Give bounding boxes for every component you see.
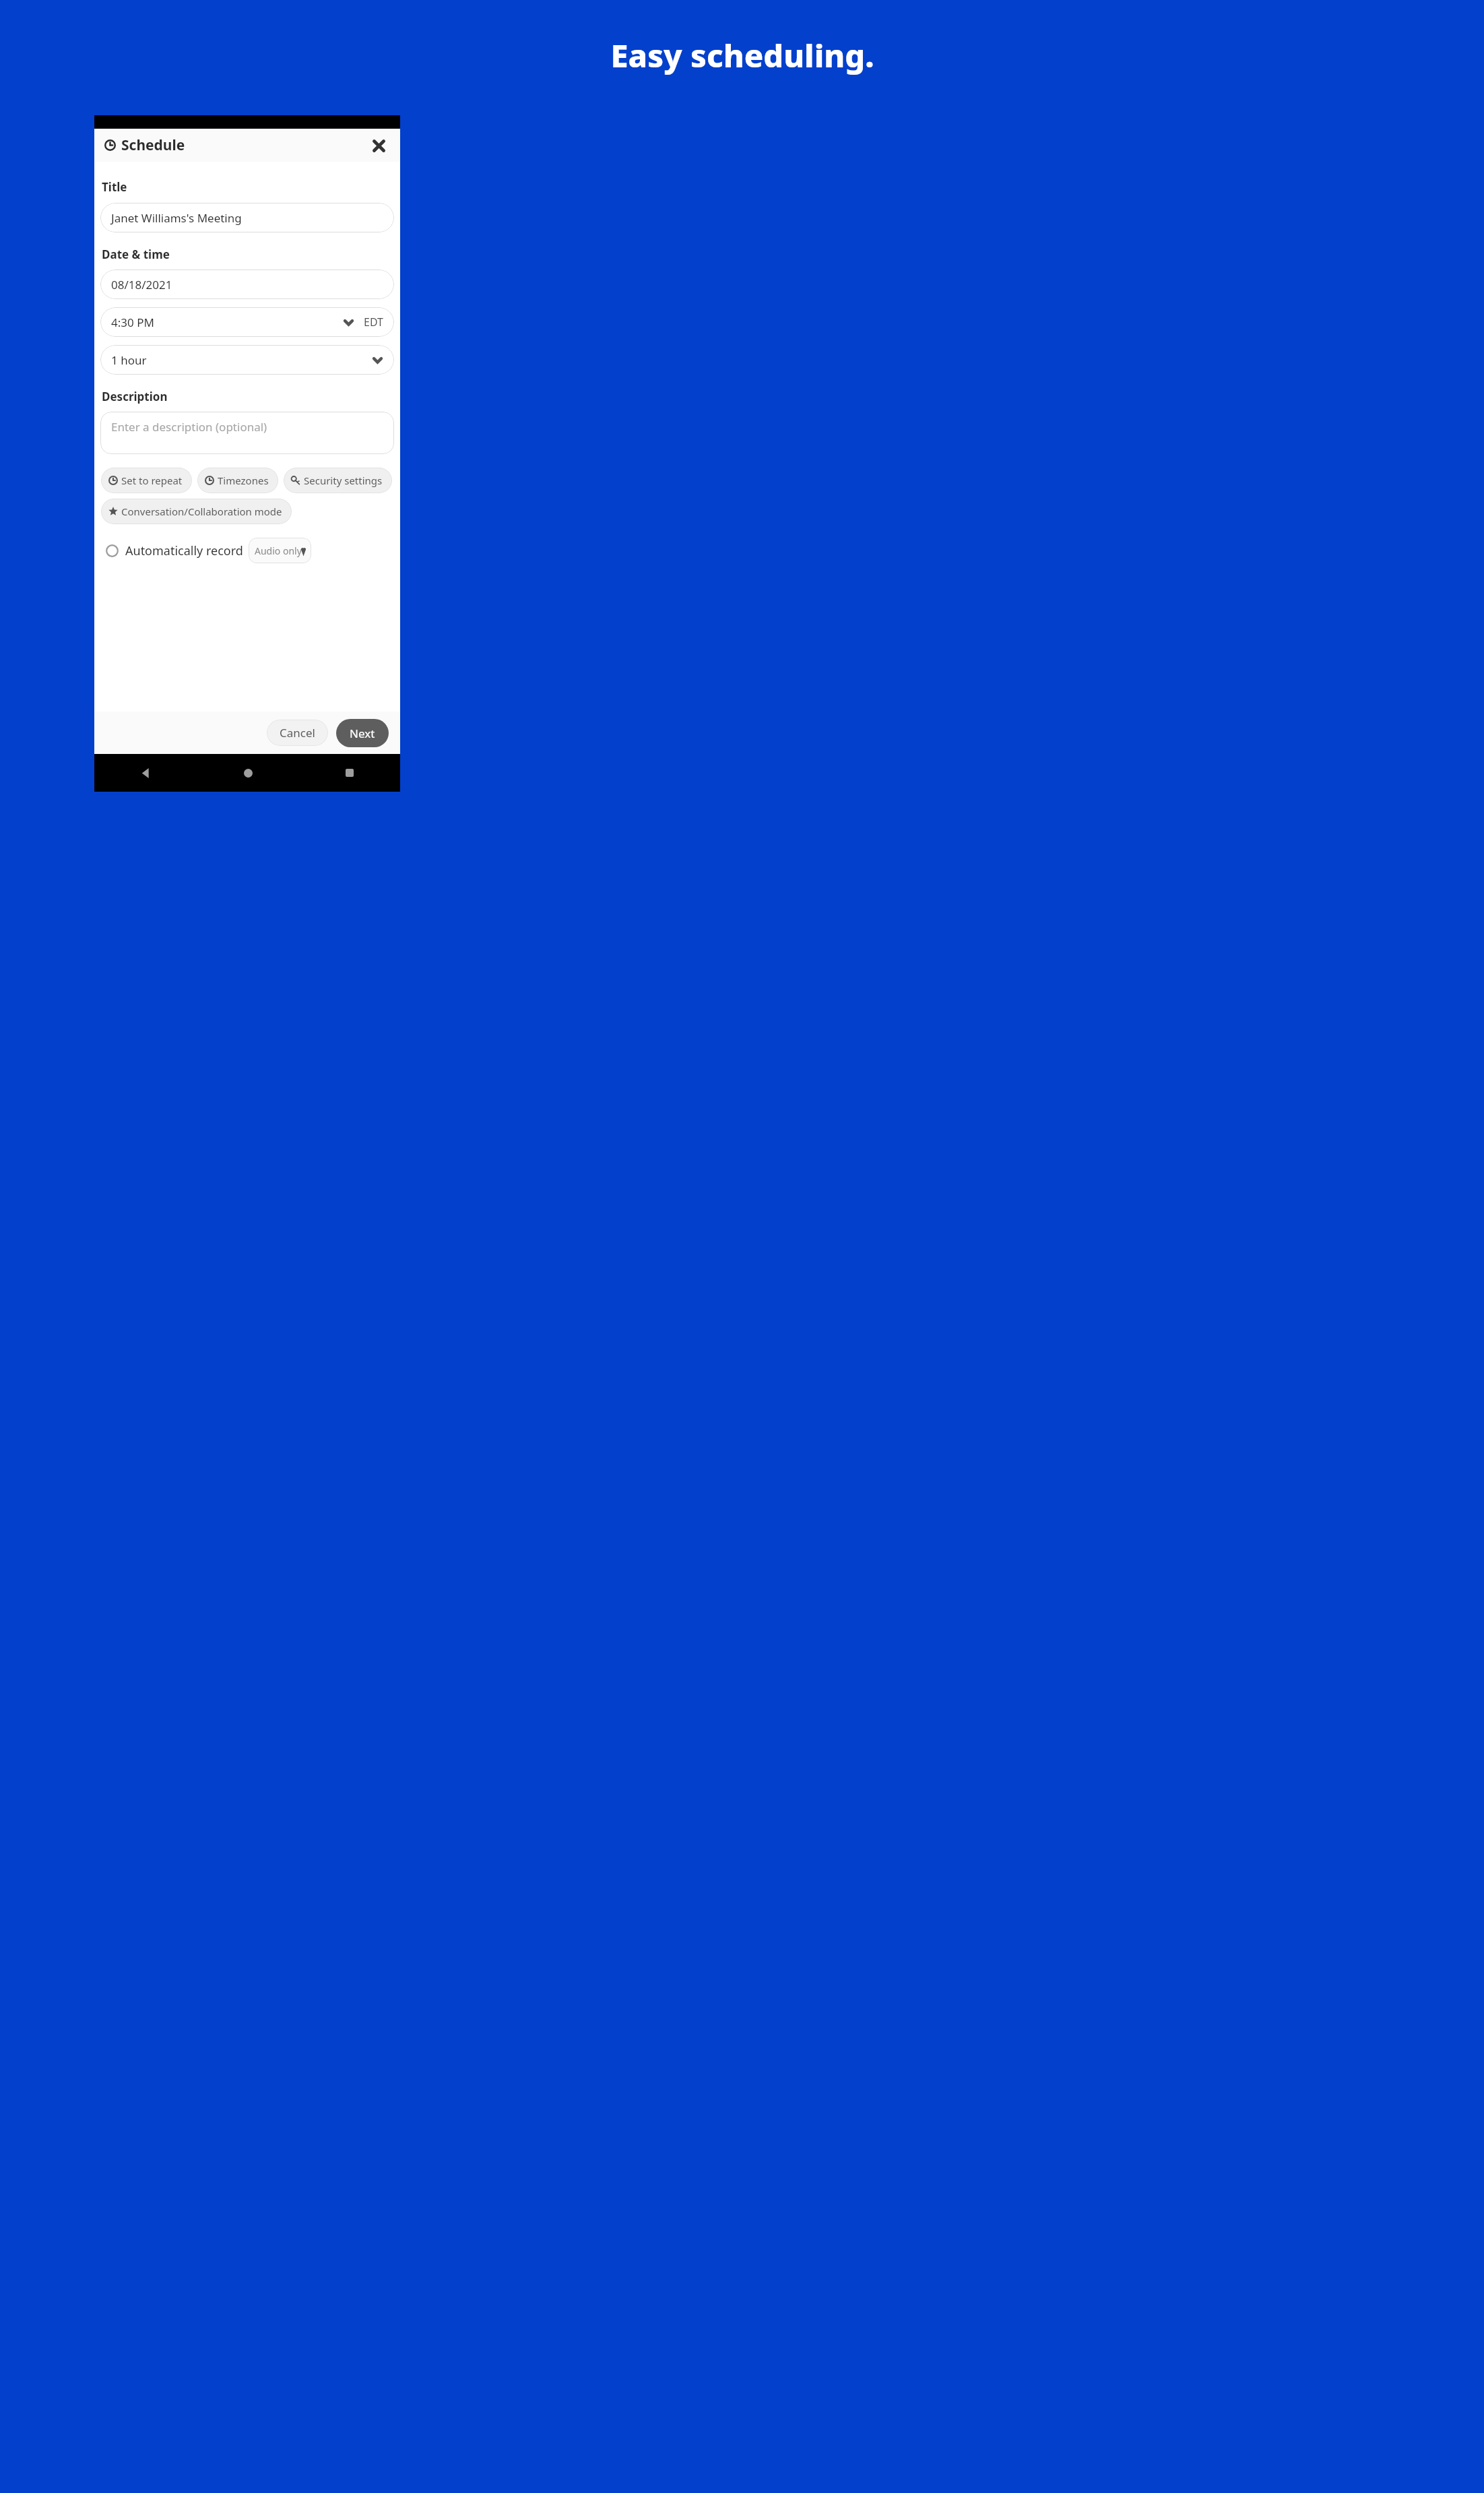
button[interactable]: Set to repeat bbox=[101, 468, 192, 493]
staticText: Title bbox=[102, 179, 127, 195]
button[interactable]: Cancel bbox=[267, 720, 328, 746]
staticText: Audio only bbox=[255, 544, 302, 557]
button[interactable]: 1 hour bbox=[100, 345, 394, 375]
button[interactable]: Close bbox=[367, 134, 390, 157]
button[interactable]: Enter a description (optional) bbox=[100, 412, 394, 454]
staticText: 08/18/2021 bbox=[111, 277, 172, 292]
button[interactable]: Automatically record toggle bbox=[102, 540, 122, 561]
button[interactable]: 08/18/2021 bbox=[100, 270, 394, 299]
button[interactable]: Recents bbox=[337, 761, 362, 785]
staticText: Description bbox=[102, 389, 168, 404]
staticText: Enter a description (optional) bbox=[111, 419, 267, 435]
button[interactable]: Back bbox=[133, 761, 158, 785]
button[interactable]: Security settings bbox=[284, 468, 392, 493]
staticText: Automatically record bbox=[125, 542, 243, 559]
button[interactable]: Home bbox=[236, 761, 260, 785]
staticText: Security settings bbox=[304, 474, 383, 487]
staticText: Date & time bbox=[102, 247, 170, 262]
staticText: Schedule bbox=[121, 135, 185, 155]
button[interactable]: Janet Williams's Meeting bbox=[100, 203, 394, 232]
staticText: Janet Williams's Meeting bbox=[111, 210, 242, 226]
staticText: Conversation/Collaboration mode bbox=[121, 505, 282, 518]
button[interactable]: Next bbox=[336, 719, 389, 747]
staticText: Set to repeat bbox=[121, 474, 183, 487]
staticText: 1 hour bbox=[111, 352, 147, 368]
staticText: Timezones bbox=[218, 474, 269, 487]
staticText: Cancel bbox=[280, 725, 315, 740]
staticText: Next bbox=[350, 726, 375, 741]
button[interactable]: Audio only bbox=[249, 538, 311, 563]
staticText: 4:30 PM bbox=[111, 315, 154, 330]
button[interactable]: Conversation/Collaboration mode bbox=[101, 499, 292, 524]
button[interactable]: Timezones bbox=[197, 468, 278, 493]
staticText: Easy scheduling. bbox=[610, 34, 874, 77]
button[interactable]: 4:30 PM bbox=[100, 307, 394, 337]
staticText: EDT bbox=[364, 315, 383, 329]
